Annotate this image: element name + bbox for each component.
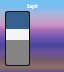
staticText: Sayit: [27, 3, 38, 9]
